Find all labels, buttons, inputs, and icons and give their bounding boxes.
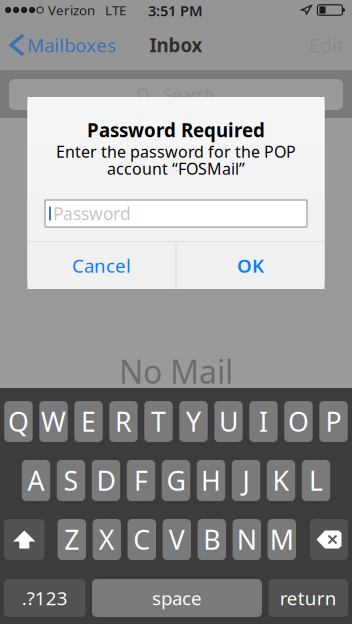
staticText: R (115, 404, 132, 439)
staticText: T (151, 404, 166, 439)
button[interactable]: Z (58, 519, 86, 560)
staticText: E (81, 404, 96, 439)
button[interactable]: Mailboxes (0, 23, 116, 67)
staticText: Y (186, 404, 201, 439)
button[interactable]: .?123 (4, 579, 85, 617)
staticText: W (41, 404, 66, 439)
staticText: account “FOSMail” (107, 158, 245, 179)
button[interactable]: C (128, 519, 156, 560)
button[interactable]: N (233, 519, 261, 560)
staticText: 3:51 PM (148, 1, 203, 20)
button[interactable]: Y (179, 401, 208, 442)
staticText: X (99, 522, 115, 557)
staticText: Mailboxes (27, 33, 116, 57)
staticText: Enter the password for the POP (56, 141, 296, 162)
button[interactable]: P (319, 401, 348, 442)
staticText: U (219, 404, 238, 439)
staticText: V (169, 522, 185, 557)
button[interactable]: I (249, 401, 278, 442)
staticText: M (270, 522, 294, 557)
button[interactable]: L (302, 460, 330, 501)
staticText: No Mail (119, 350, 233, 392)
staticText: D (96, 463, 115, 498)
button[interactable]: O (284, 401, 313, 442)
button[interactable]: S (57, 460, 85, 501)
button[interactable]: B (198, 519, 226, 560)
staticText: P (325, 404, 341, 439)
button[interactable]: U (214, 401, 243, 442)
button[interactable]: Q (4, 401, 33, 442)
button[interactable]: F (127, 460, 155, 501)
staticText: Z (64, 522, 79, 557)
button[interactable]: D (92, 460, 120, 501)
staticText: I (259, 404, 268, 439)
staticText: N (237, 522, 257, 557)
staticText: F (134, 463, 148, 498)
button[interactable]: T (144, 401, 173, 442)
staticText: Edit (309, 32, 344, 58)
button[interactable]: H (197, 460, 225, 501)
button[interactable]: OK (176, 242, 324, 289)
staticText: Inbox (149, 33, 202, 57)
staticText: LTE (105, 1, 126, 19)
staticText: B (203, 522, 220, 557)
staticText: OK (237, 253, 264, 278)
staticText: Password (53, 202, 131, 225)
staticText: C (133, 522, 150, 557)
staticText: S (63, 463, 78, 498)
button[interactable]: return (268, 579, 348, 617)
staticText: Password Required (87, 118, 265, 142)
staticText: Cancel (72, 253, 131, 278)
staticText: A (27, 463, 44, 498)
staticText: K (272, 463, 289, 498)
staticText: G (166, 463, 185, 498)
button[interactable]: space (92, 579, 262, 617)
button[interactable]: E (74, 401, 103, 442)
staticText: return (280, 586, 337, 610)
button[interactable]: G (162, 460, 190, 501)
button[interactable]: Shift (4, 519, 45, 560)
button[interactable]: Delete (310, 519, 348, 560)
staticText: L (309, 463, 323, 498)
staticText: H (201, 463, 221, 498)
button[interactable]: K (267, 460, 295, 501)
button[interactable]: M (268, 519, 296, 560)
button[interactable]: Cancel (27, 242, 175, 289)
button[interactable]: J (232, 460, 260, 501)
button[interactable]: X (93, 519, 121, 560)
staticText: Verizon (48, 1, 95, 19)
staticText: J (242, 463, 249, 498)
button[interactable]: W (39, 401, 68, 442)
staticText: space (152, 586, 202, 610)
button[interactable]: R (109, 401, 138, 442)
staticText: .?123 (22, 586, 68, 610)
button[interactable]: V (163, 519, 191, 560)
staticText: Search (163, 84, 214, 105)
staticText: Q (8, 404, 29, 439)
staticText: O (288, 404, 309, 439)
button[interactable]: A (22, 460, 50, 501)
